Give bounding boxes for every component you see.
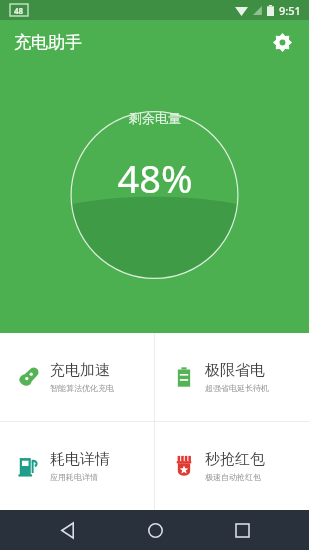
- button[interactable]: 充电加速: [0, 333, 154, 421]
- staticText: 秒抢红包: [205, 450, 265, 469]
- staticText: 48: [14, 5, 24, 16]
- button[interactable]: 耗电详情: [0, 422, 154, 510]
- button[interactable]: 秒抢红包: [155, 422, 309, 510]
- button[interactable]: Back: [47, 510, 87, 550]
- button[interactable]: Settings: [265, 25, 299, 59]
- staticText: 剩余电量: [129, 110, 181, 126]
- staticText: 极速自动抢红包: [205, 472, 261, 482]
- staticText: 9:51: [279, 3, 301, 18]
- staticText: 48%: [117, 152, 193, 204]
- staticText: 极限省电: [205, 361, 265, 380]
- staticText: 充电加速: [50, 361, 110, 380]
- staticText: 充电助手: [14, 32, 82, 53]
- button[interactable]: 极限省电: [155, 333, 309, 421]
- button[interactable]: Recents: [222, 510, 262, 550]
- staticText: 超强省电延长待机: [205, 383, 269, 393]
- staticText: 耗电详情: [50, 450, 110, 469]
- button[interactable]: Home: [135, 510, 175, 550]
- staticText: 智能算法优化充电: [50, 383, 114, 393]
- staticText: 应用耗电详情: [50, 472, 98, 482]
